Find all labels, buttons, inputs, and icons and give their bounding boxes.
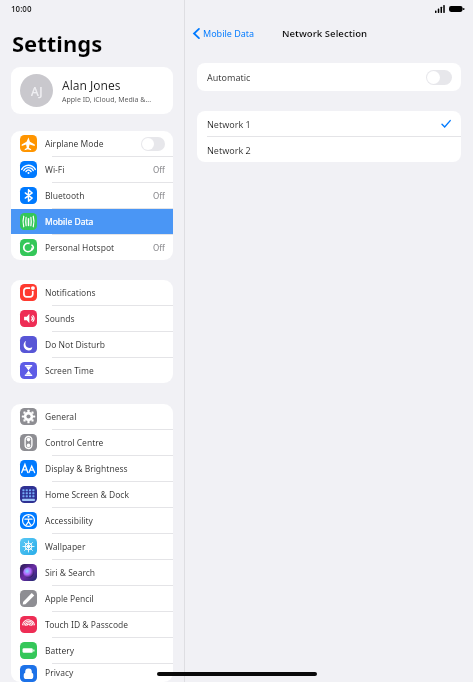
button[interactable]: Network 2 — [197, 137, 461, 162]
button[interactable]: Apple Pencil — [11, 586, 173, 611]
staticText: Off — [153, 190, 165, 201]
button[interactable]: Touch ID & Passcode — [11, 612, 173, 637]
staticText: 10:00 — [11, 3, 32, 14]
staticText: Mobile Data — [203, 27, 255, 39]
button[interactable]: Automatic — [197, 63, 461, 91]
staticText: Apple ID, iCloud, Media &... — [62, 95, 152, 105]
button[interactable]: Screen Time — [11, 358, 173, 383]
button[interactable]: Personal Hotspot — [11, 235, 173, 260]
staticText: General — [45, 411, 165, 423]
button[interactable]: Home Screen & Dock — [11, 482, 173, 507]
button[interactable]: Airplane Mode — [11, 131, 173, 156]
staticText: Off — [153, 164, 165, 175]
button[interactable]: Siri & Search — [11, 560, 173, 585]
staticText: Siri & Search — [45, 567, 165, 579]
button[interactable]: Bluetooth — [11, 183, 173, 208]
staticText: Wallpaper — [45, 541, 165, 553]
button[interactable]: Wi-Fi — [11, 157, 173, 182]
button[interactable]: Sounds — [11, 306, 173, 331]
staticText: Privacy — [45, 667, 165, 679]
button[interactable]: Battery — [11, 638, 173, 663]
staticText: Apple Pencil — [45, 593, 165, 605]
staticText: Control Centre — [45, 437, 165, 449]
staticText: Network Selection — [282, 27, 368, 40]
staticText: Mobile Data — [45, 216, 165, 228]
staticText: Screen Time — [45, 365, 165, 377]
button[interactable]: Wallpaper — [11, 534, 173, 559]
staticText: Network 2 — [207, 144, 451, 156]
staticText: Settings — [12, 28, 103, 58]
staticText: Display & Brightness — [45, 463, 165, 475]
button[interactable]: Display & Brightness — [11, 456, 173, 481]
staticText: Home Screen & Dock — [45, 489, 165, 501]
button[interactable]: Do Not Disturb — [11, 332, 173, 357]
button[interactable]: Notifications — [11, 280, 173, 305]
button[interactable]: General — [11, 404, 173, 429]
staticText: AJ — [31, 83, 43, 99]
staticText: Battery — [45, 645, 165, 657]
button[interactable]: Airplane Mode — [141, 137, 165, 151]
staticText: Wi-Fi — [45, 164, 153, 176]
button[interactable]: AJ — [11, 67, 173, 114]
staticText: Alan Jones — [62, 77, 121, 93]
staticText: Automatic — [207, 71, 426, 83]
staticText: Do Not Disturb — [45, 339, 165, 351]
button[interactable]: Privacy — [11, 664, 173, 682]
button[interactable]: Mobile Data — [11, 209, 173, 234]
button[interactable]: Network 1 — [197, 111, 461, 136]
staticText: Airplane Mode — [45, 138, 141, 150]
staticText: Bluetooth — [45, 190, 153, 202]
staticText: Notifications — [45, 287, 165, 299]
staticText: Network 1 — [207, 118, 441, 130]
staticText: Accessibility — [45, 515, 165, 527]
staticText: Touch ID & Passcode — [45, 619, 165, 631]
button[interactable]: Control Centre — [11, 430, 173, 455]
button[interactable]: Mobile Data — [190, 24, 258, 42]
button[interactable]: Automatic — [426, 70, 452, 85]
staticText: Sounds — [45, 313, 165, 325]
button[interactable]: Accessibility — [11, 508, 173, 533]
staticText: Off — [153, 242, 165, 253]
staticText: Personal Hotspot — [45, 242, 153, 254]
